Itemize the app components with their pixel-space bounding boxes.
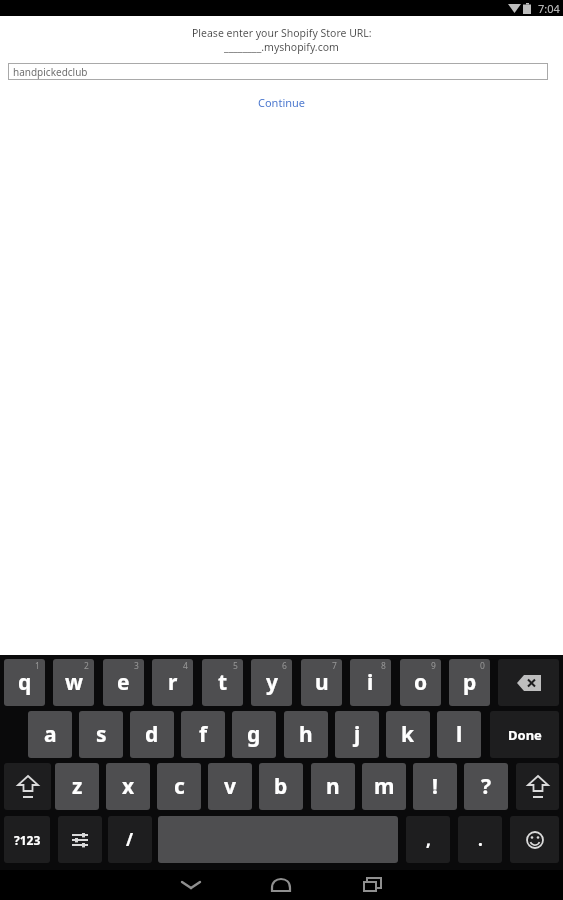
staticText: f	[199, 720, 208, 749]
button[interactable]: u	[301, 659, 342, 706]
button[interactable]: n	[311, 763, 355, 810]
button[interactable]: j	[335, 711, 379, 758]
button[interactable]: f	[181, 711, 225, 758]
staticText: Done	[508, 726, 542, 744]
button[interactable]: t	[202, 659, 243, 706]
button[interactable]: v	[208, 763, 252, 810]
button[interactable]: z	[55, 763, 99, 810]
button[interactable]	[516, 763, 559, 810]
staticText: !	[432, 772, 438, 801]
staticText: b	[274, 772, 288, 801]
staticText: 1	[35, 660, 40, 672]
staticText: 9	[431, 660, 436, 672]
button[interactable]	[4, 763, 51, 810]
staticText: ,	[426, 828, 431, 851]
button[interactable]: Continue	[256, 93, 308, 112]
button[interactable]: handpickedclub	[8, 63, 548, 80]
staticText: 5	[233, 660, 238, 672]
staticText: 6	[282, 660, 287, 672]
staticText: 3	[134, 660, 139, 672]
staticText: ?123	[14, 832, 41, 848]
staticText: r	[168, 668, 178, 697]
staticText: 7:04	[538, 1, 560, 16]
button[interactable]: k	[386, 711, 430, 758]
staticText: o	[414, 668, 428, 697]
button[interactable]: i	[350, 659, 391, 706]
staticText: s	[96, 720, 107, 749]
staticText: u	[315, 668, 329, 697]
button[interactable]: e	[103, 659, 144, 706]
staticText: d	[145, 720, 159, 749]
button[interactable]: m	[362, 763, 406, 810]
button[interactable]: .	[458, 816, 502, 863]
button[interactable]	[176, 870, 206, 900]
button[interactable]: Done	[490, 711, 559, 758]
button[interactable]: s	[79, 711, 123, 758]
staticText: w	[65, 668, 83, 697]
staticText: v	[224, 772, 236, 801]
button[interactable]: w	[53, 659, 94, 706]
button[interactable]: q	[4, 659, 45, 706]
staticText: ?	[481, 772, 492, 801]
button[interactable]	[357, 870, 387, 900]
staticText: 7	[332, 660, 337, 672]
staticText: i	[367, 668, 374, 697]
button[interactable]: c	[157, 763, 201, 810]
button[interactable]: h	[284, 711, 328, 758]
staticText: 8	[381, 660, 386, 672]
staticText: 4	[183, 660, 188, 672]
button[interactable]: y	[251, 659, 292, 706]
staticText: Please enter your Shopify Store URL:	[192, 26, 372, 40]
button[interactable]: ?123	[4, 816, 50, 863]
staticText: n	[326, 772, 340, 801]
staticText: Continue	[258, 95, 306, 110]
staticText: t	[218, 668, 228, 697]
button[interactable]: o	[400, 659, 441, 706]
button[interactable]: /	[108, 816, 152, 863]
button[interactable]: r	[152, 659, 193, 706]
button[interactable]: x	[106, 763, 150, 810]
button[interactable]	[498, 659, 559, 706]
button[interactable]	[266, 870, 296, 900]
staticText: j	[354, 720, 361, 749]
staticText: l	[456, 720, 463, 749]
staticText: e	[117, 668, 130, 697]
button[interactable]: b	[259, 763, 303, 810]
button[interactable]: ,	[406, 816, 450, 863]
staticText: a	[44, 720, 57, 749]
staticText: /	[126, 828, 134, 851]
button[interactable]: ?	[464, 763, 508, 810]
staticText: ________.myshopify.com	[224, 40, 339, 54]
button[interactable]: p	[449, 659, 490, 706]
staticText: c	[174, 772, 185, 801]
button[interactable]	[58, 816, 102, 863]
staticText: handpickedclub	[13, 65, 88, 79]
staticText: h	[299, 720, 313, 749]
button[interactable]: g	[232, 711, 276, 758]
button[interactable]: !	[413, 763, 457, 810]
button[interactable]: l	[437, 711, 481, 758]
staticText: y	[266, 668, 278, 697]
button[interactable]: d	[130, 711, 174, 758]
staticText: 0	[480, 660, 485, 672]
staticText: k	[401, 720, 415, 749]
staticText: .	[478, 828, 483, 851]
staticText: z	[72, 772, 83, 801]
button[interactable]	[510, 816, 559, 863]
staticText: p	[463, 668, 477, 697]
staticText: 2	[84, 660, 89, 672]
button[interactable]: a	[28, 711, 72, 758]
staticText: q	[18, 668, 32, 697]
staticText: x	[122, 772, 135, 801]
staticText: g	[247, 720, 261, 749]
staticText: m	[374, 772, 395, 801]
